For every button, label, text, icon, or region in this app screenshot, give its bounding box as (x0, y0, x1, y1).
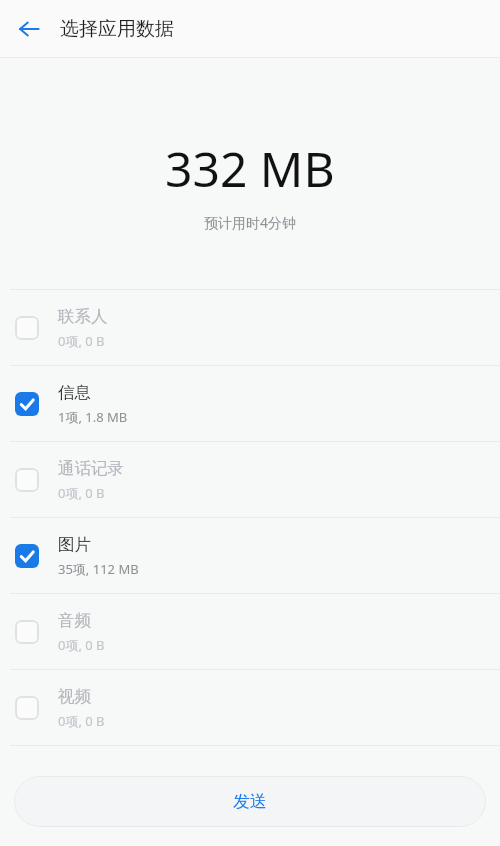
staticText: 0项, 0 B (58, 484, 105, 502)
staticText: 发送 (233, 791, 267, 812)
staticText: 0项, 0 B (58, 332, 105, 350)
staticText: 0项, 0 B (58, 636, 105, 654)
staticText: 0项, 0 B (58, 712, 105, 730)
staticText: 35项, 112 MB (58, 560, 139, 578)
staticText: 预计用时4分钟 (204, 213, 297, 232)
button[interactable]: 信息 (0, 366, 500, 441)
staticText: 通话记录 (58, 458, 124, 479)
button[interactable]: 图片 (0, 518, 500, 593)
button[interactable]: 发送 (14, 776, 486, 827)
button[interactable]: 联系人 (0, 290, 500, 365)
staticText: 联系人 (58, 306, 108, 327)
button[interactable]: Back (10, 10, 48, 48)
staticText: 信息 (58, 382, 91, 403)
staticText: 音频 (58, 610, 91, 631)
staticText: 选择应用数据 (60, 17, 174, 41)
button[interactable]: 音频 (0, 594, 500, 669)
staticText: 332 MB (165, 136, 335, 201)
button[interactable]: 通话记录 (0, 442, 500, 517)
staticText: 视频 (58, 686, 91, 707)
button[interactable]: 视频 (0, 670, 500, 745)
staticText: 图片 (58, 534, 91, 555)
staticText: 1项, 1.8 MB (58, 408, 128, 426)
